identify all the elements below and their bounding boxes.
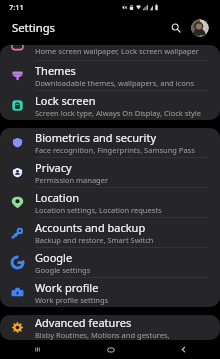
staticText: Work profile settings [35,295,109,305]
button[interactable]: Privacy [0,158,220,187]
staticText: Screen lock type, Always On Display, Clo… [35,108,202,118]
staticText: Themes [35,63,76,78]
button[interactable]: Biometrics and security [0,128,220,157]
button[interactable]: Location [0,188,220,217]
button[interactable]: Themes [0,61,220,90]
staticText: Work profile [35,280,99,295]
button[interactable]: Home screen wallpaper, Lock screen wallp… [0,45,220,60]
button[interactable]: Accounts and backup [0,218,220,247]
button[interactable]: Search [167,19,185,37]
button[interactable]: Work profile [0,278,220,307]
button[interactable]: Home [74,340,147,359]
staticText: Backup and restore, Smart Switch [35,235,154,245]
staticText: Downloadable themes, wallpapers, and ico… [35,78,194,88]
button[interactable]: Account [191,19,209,37]
staticText: Face recognition, Fingerprints, Samsung … [35,145,195,155]
staticText: Bixby Routines, Motions and gestures, [35,330,170,340]
staticText: 7:11 [9,2,24,12]
staticText: Privacy [35,160,72,175]
staticText: Biometrics and security [35,130,156,145]
staticText: Advanced features [35,315,132,330]
staticText: Google settings [35,265,91,275]
staticText: Accounts and backup [35,220,146,235]
button[interactable]: Lock screen [0,91,220,120]
button[interactable]: Back [147,340,220,359]
staticText: Location settings, Location requests [35,205,162,215]
staticText: Location [35,190,80,205]
button[interactable]: Recents [0,340,74,359]
staticText: Home screen wallpaper, Lock screen wallp… [35,46,199,56]
button[interactable]: Google [0,248,220,277]
button[interactable]: Advanced features [0,315,220,340]
staticText: Lock screen [35,93,96,108]
staticText: Google [35,250,73,265]
staticText: Permission manager [35,175,109,185]
staticText: Settings [12,20,55,35]
